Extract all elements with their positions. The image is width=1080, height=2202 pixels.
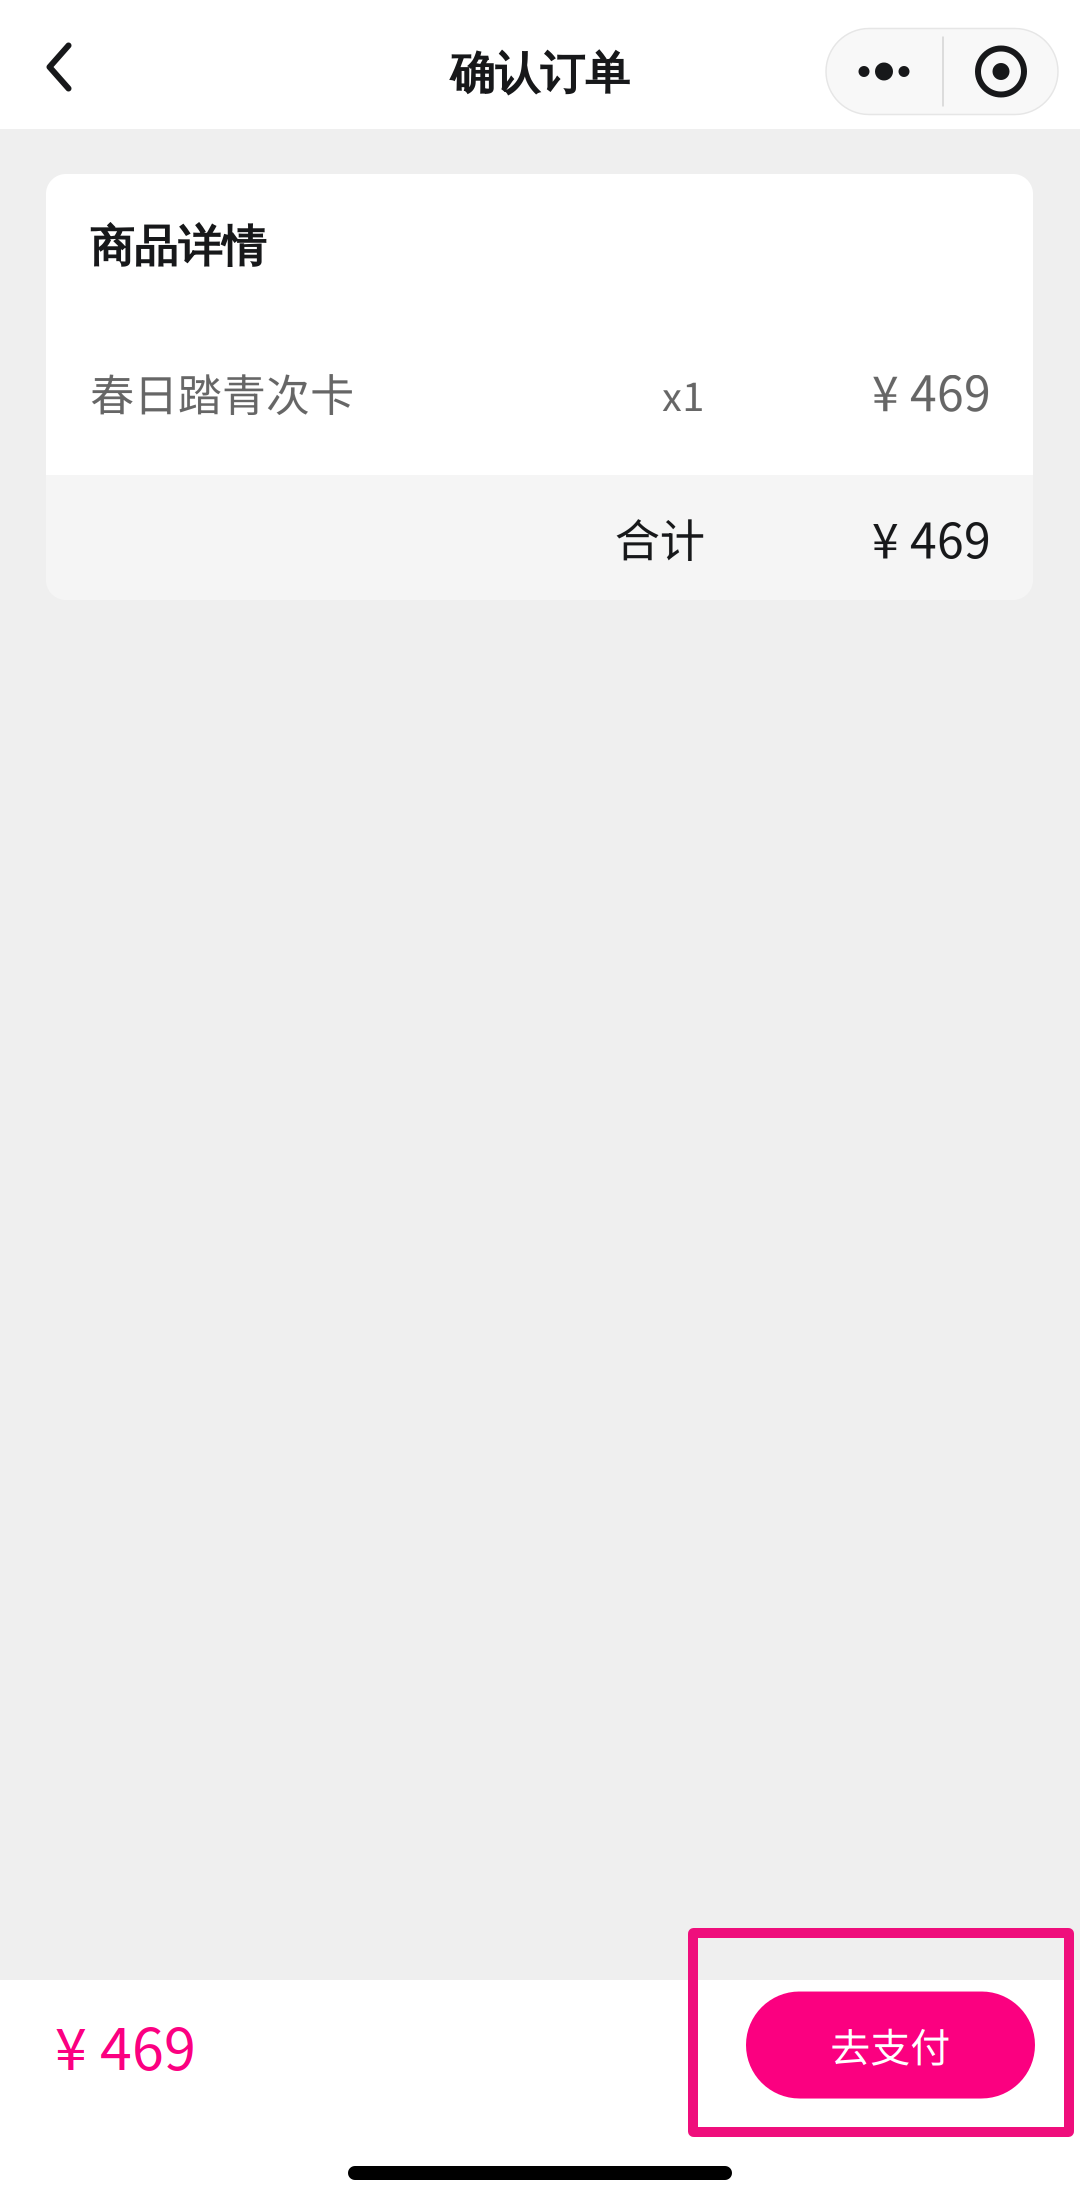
button[interactable]: 更多与关闭小程序 (826, 14, 1080, 114)
staticText: 确认订单 (450, 45, 630, 102)
staticText: 去支付 (830, 2016, 950, 2074)
button[interactable]: 去支付 (746, 1991, 1035, 2098)
staticText: x1 (662, 365, 704, 423)
staticText: ¥ 469 (872, 503, 991, 572)
staticText: 商品详情 (90, 219, 266, 274)
staticText: 合计 (615, 505, 705, 570)
staticText: ¥ 469 (55, 2003, 196, 2086)
staticText: ¥ 469 (872, 355, 991, 425)
button[interactable]: 返回 (0, 0, 118, 129)
staticText: 春日踏青次卡 (90, 360, 354, 424)
